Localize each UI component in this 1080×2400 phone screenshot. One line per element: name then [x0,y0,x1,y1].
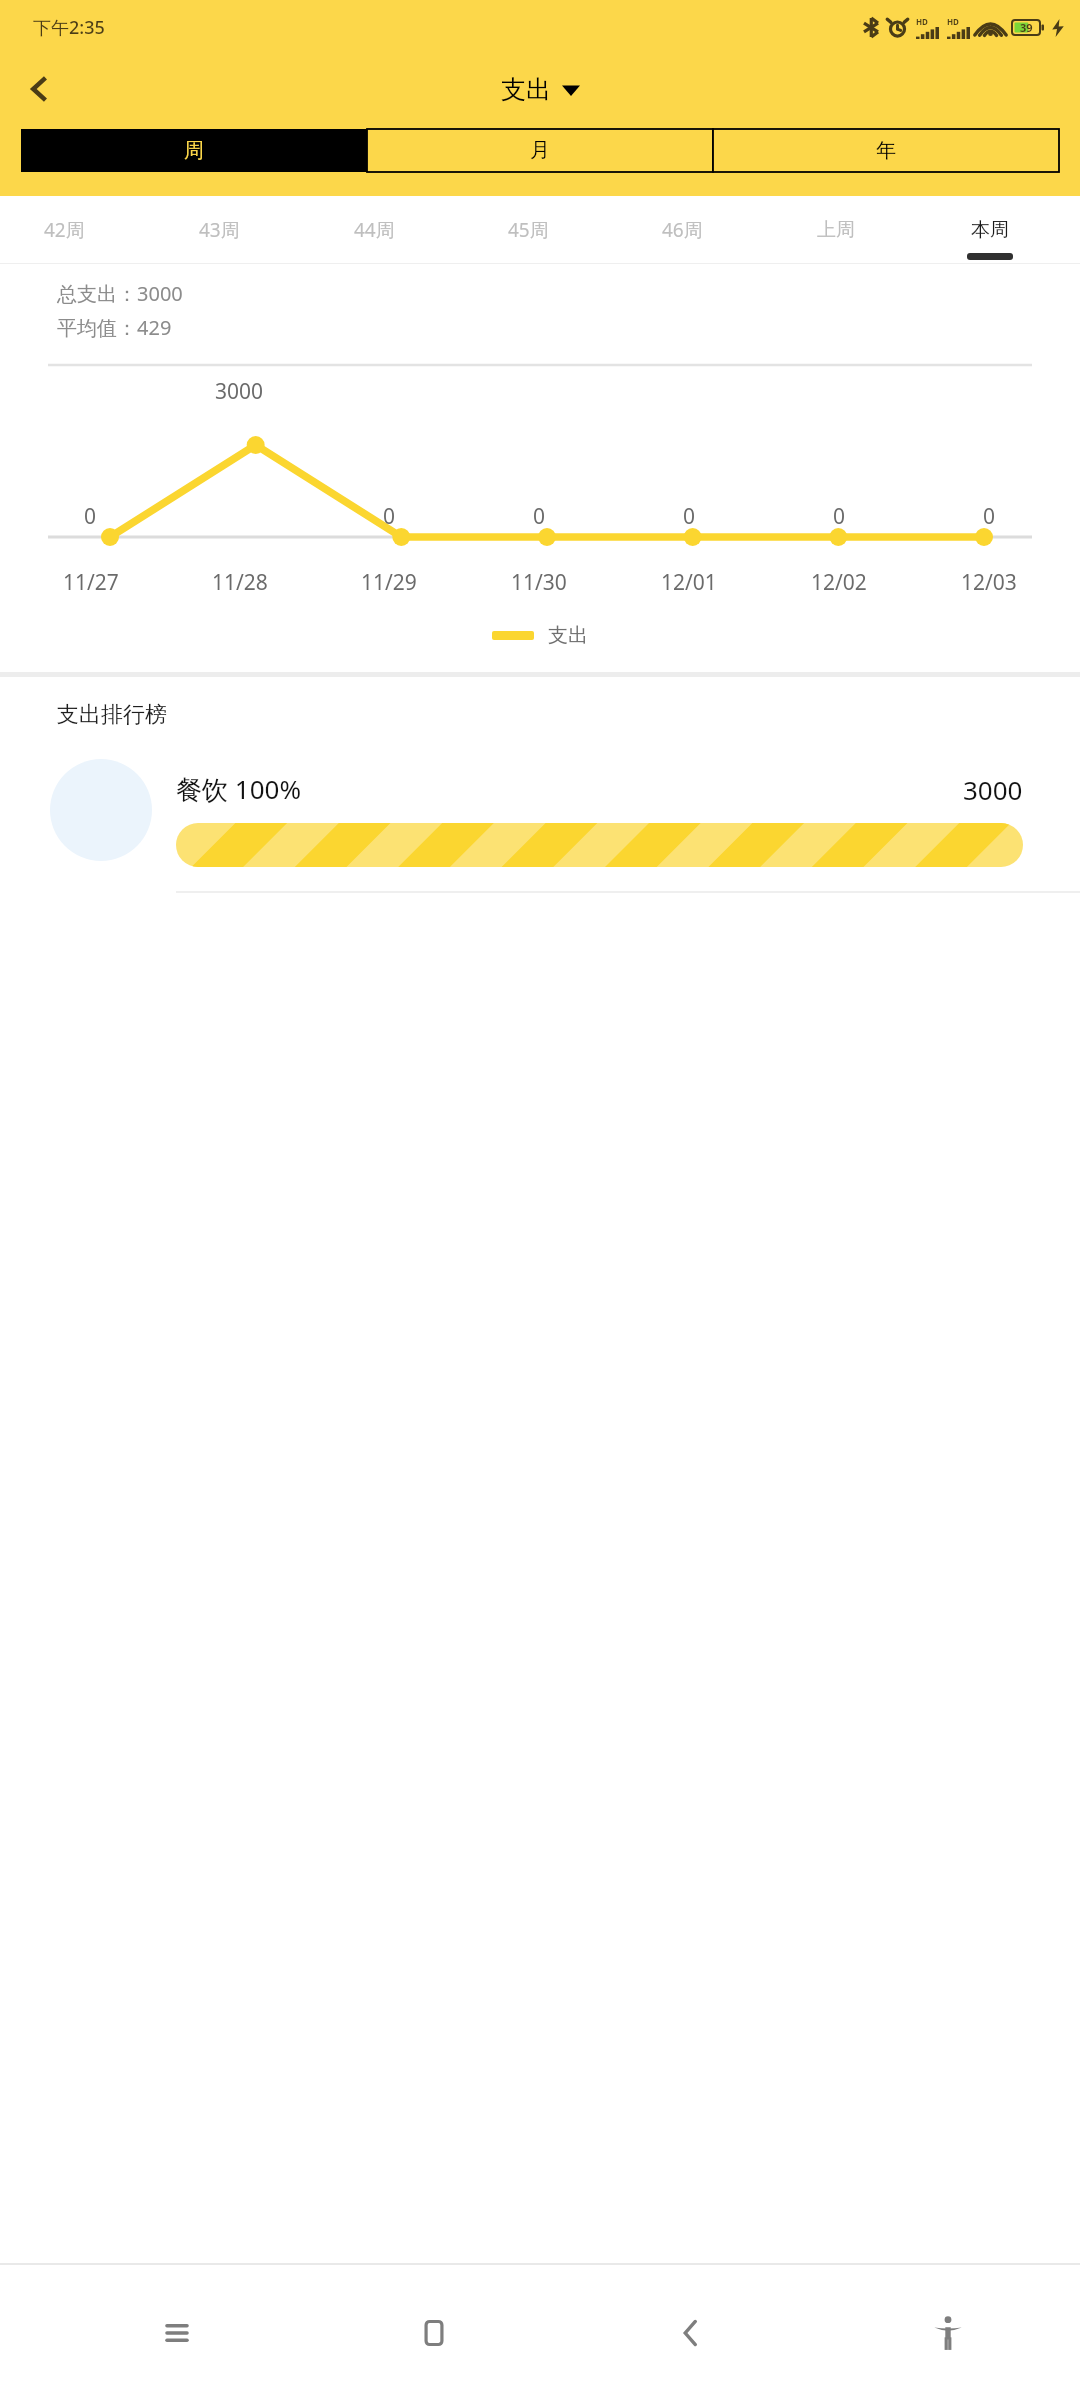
staticText: 支出 [548,623,588,648]
button[interactable]: 年 [713,129,1059,172]
staticText: 支出 [501,74,551,105]
staticText: 月 [530,138,550,163]
button[interactable]: Home [388,2287,480,2379]
staticText: 44周 [354,217,395,243]
staticText: 下午2:35 [33,15,105,40]
button[interactable]: 44周 [297,196,451,264]
staticText: 3000 [215,377,264,406]
staticText: 餐饮 100% [176,771,301,807]
staticText: HD [947,16,959,27]
staticText: HD [916,16,928,27]
button[interactable]: 月 [367,129,713,172]
button[interactable]: 餐饮 100% [0,759,1080,867]
button[interactable]: 本周 [913,196,1067,264]
button[interactable]: 42周 [0,196,142,264]
staticText: 46周 [662,217,703,243]
staticText: 12/01 [661,568,717,597]
staticText: 平均值：429 [57,314,172,341]
staticText: 3000 [963,772,1023,807]
button[interactable]: Menu [131,2287,223,2379]
button[interactable]: 46周 [605,196,759,264]
staticText: 11/30 [511,568,567,597]
staticText: 上周 [817,218,855,242]
staticText: 12/03 [961,568,1017,597]
staticText: 年 [876,138,896,163]
staticText: 0 [983,502,996,531]
staticText: 0 [84,502,97,531]
staticText: 0 [383,502,396,531]
button[interactable]: 支出 [491,68,590,111]
button[interactable]: 45周 [451,196,605,264]
button[interactable]: 周 [21,129,367,172]
button[interactable]: Back [10,60,68,118]
staticText: 39 [1020,20,1033,35]
staticText: 0 [533,502,546,531]
staticText: 43周 [199,217,240,243]
staticText: 11/27 [63,568,119,597]
button[interactable]: Back [645,2287,737,2379]
button[interactable]: 上周 [759,196,913,264]
staticText: 45周 [508,217,549,243]
staticText: 本周 [971,218,1009,242]
staticText: 支出排行榜 [57,701,167,729]
staticText: 总支出：3000 [57,280,183,307]
staticText: 0 [833,502,846,531]
button[interactable]: 43周 [142,196,297,264]
staticText: 周 [184,138,204,163]
staticText: 42周 [44,217,85,243]
staticText: 12/02 [811,568,867,597]
button[interactable]: Accessibility [902,2287,994,2379]
staticText: 11/29 [361,568,417,597]
staticText: 11/28 [212,568,268,597]
staticText: 0 [683,502,696,531]
